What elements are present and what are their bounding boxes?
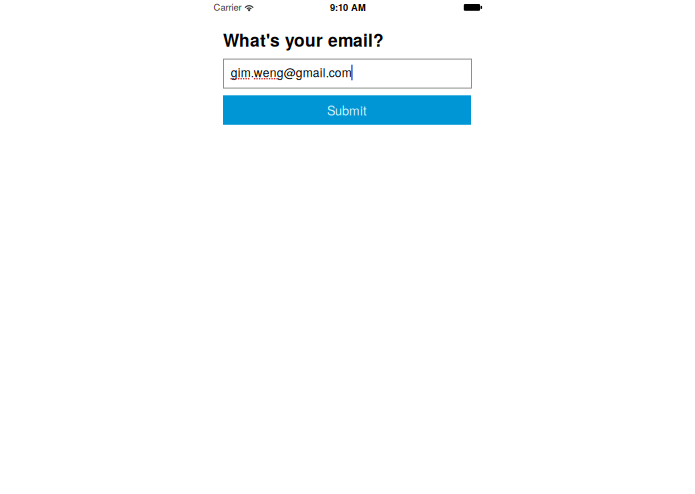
staticText: What's your email? <box>223 27 384 52</box>
button[interactable]: Submit <box>223 95 471 125</box>
staticText: Carrier <box>213 0 241 13</box>
staticText: Submit <box>327 101 367 119</box>
staticText: 9:10 AM <box>330 0 366 14</box>
button[interactable]: Email address <box>223 59 471 88</box>
staticText: gim.weng@gmail.com <box>231 63 352 81</box>
